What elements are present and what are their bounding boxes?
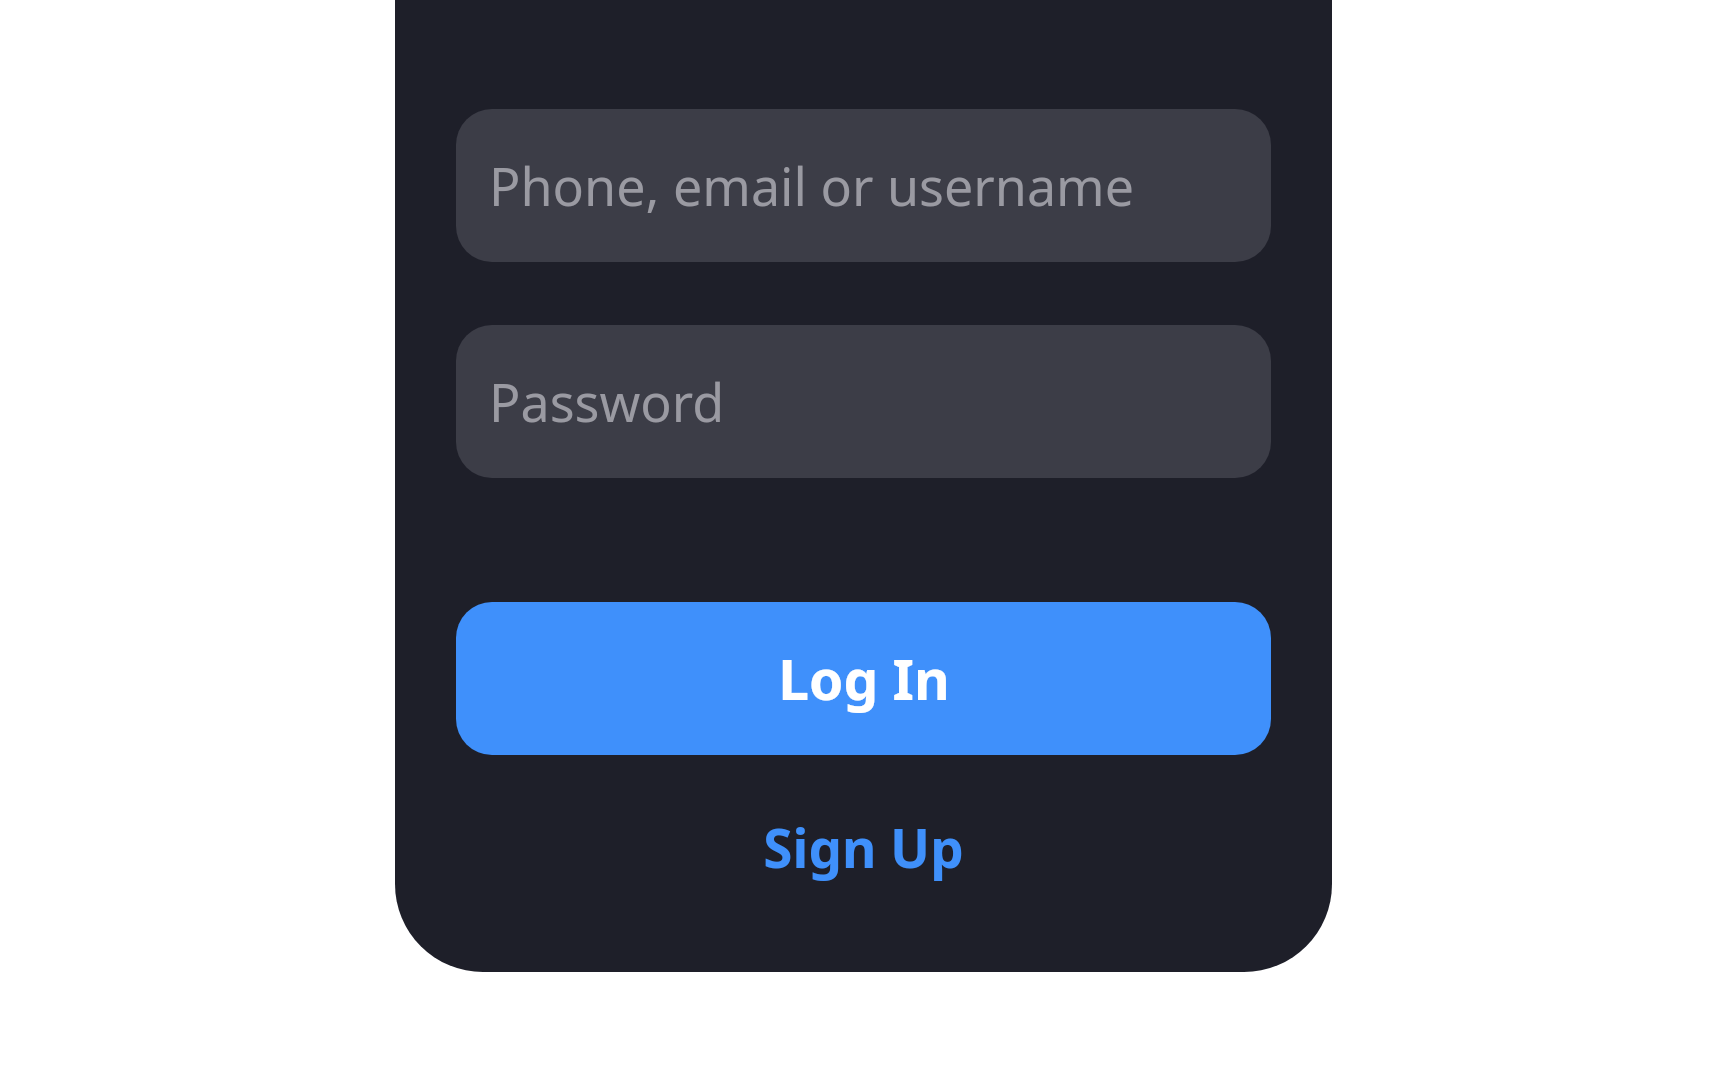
staticText: Sign Up [763,811,964,883]
button[interactable]: Password [456,325,1271,478]
button[interactable]: Log In [456,602,1271,755]
staticText: Password [489,366,725,437]
button[interactable]: Phone, email or username [456,109,1271,262]
staticText: Phone, email or username [489,150,1135,221]
button[interactable]: Sign Up [456,793,1271,901]
staticText: Log In [778,641,950,716]
